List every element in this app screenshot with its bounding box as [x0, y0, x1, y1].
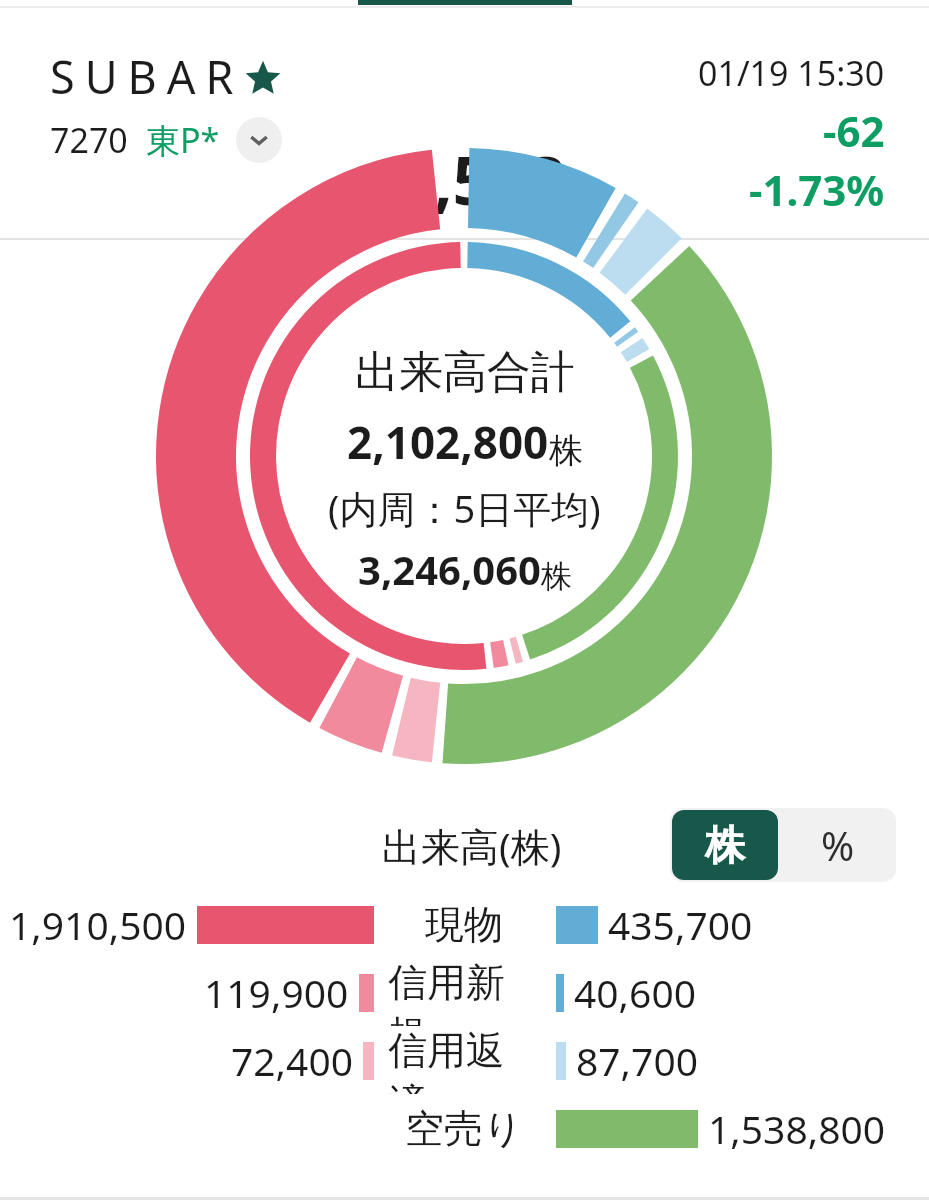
button[interactable]: % [780, 808, 896, 882]
staticText: 現物 [425, 900, 503, 949]
staticText: 3,513 [396, 134, 566, 224]
staticText: 株 [541, 557, 572, 596]
staticText: 72,400 [231, 1034, 353, 1087]
button[interactable]: 1,910,500 [0, 890, 929, 958]
staticText: 株 [549, 429, 583, 472]
staticText: 119,900 [204, 966, 349, 1019]
staticText: 1,538,800 [708, 1102, 886, 1155]
staticText: 出来高(株) [382, 819, 562, 872]
staticText: 3,246,060 [358, 542, 541, 596]
staticText: % [821, 818, 855, 872]
staticText: -1.73% [749, 161, 885, 218]
button[interactable]: 119,900 [0, 958, 929, 1026]
staticText: 01/19 15:30 [698, 50, 885, 96]
staticText: SUBAR [50, 46, 244, 107]
staticText: 435,700 [608, 898, 753, 951]
staticText: 2,102,800 [347, 412, 549, 472]
staticText: -62 [823, 102, 885, 159]
button[interactable]: 72,400 [0, 1026, 929, 1094]
staticText: 87,700 [576, 1034, 698, 1087]
staticText: 東P* [146, 117, 220, 163]
staticText: 信用新規 [388, 958, 540, 1026]
button[interactable]: 株 [672, 810, 778, 880]
staticText: 空売り [405, 1104, 523, 1153]
button[interactable]: Select market [236, 117, 282, 163]
staticText: 信用返済 [388, 1026, 540, 1094]
button[interactable] [0, 240, 929, 800]
staticText: 株 [705, 820, 745, 870]
button[interactable]: 空売り [0, 1094, 929, 1162]
staticText: 7270 [50, 117, 128, 163]
staticText: 1,910,500 [9, 898, 187, 951]
staticText: (内周：5日平均) [328, 482, 601, 534]
staticText: 出来高合計 [355, 345, 575, 400]
staticText: 40,600 [574, 966, 696, 1019]
